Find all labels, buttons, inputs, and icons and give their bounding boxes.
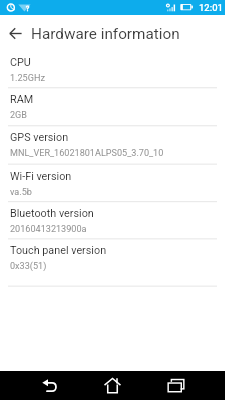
staticText: Touch panel version — [10, 244, 107, 257]
staticText: GPS version — [10, 131, 69, 144]
staticText: Hardware information — [31, 25, 180, 43]
button[interactable]: Bluetooth version — [0, 201, 225, 238]
button[interactable]: Recent apps — [161, 371, 190, 400]
staticText: CPU — [10, 56, 31, 69]
staticText: MNL_VER_16021801ALPS05_3.70_10 — [10, 148, 164, 159]
staticText: va.5b — [10, 187, 32, 198]
staticText: 0x33(51) — [10, 261, 47, 272]
staticText: 20160413213900a — [10, 224, 87, 235]
staticText: 12:01 — [199, 2, 223, 13]
button[interactable]: Navigate up — [0, 18, 30, 48]
staticText: 1.25GHz — [10, 73, 45, 84]
staticText: Bluetooth version — [10, 207, 94, 220]
button[interactable]: Back — [35, 371, 64, 400]
button[interactable]: Touch panel version — [0, 238, 225, 285]
button[interactable]: GPS version — [0, 125, 225, 163]
button[interactable]: Wi-Fi version — [0, 164, 225, 202]
button[interactable]: Home — [98, 371, 127, 400]
button[interactable]: RAM — [0, 87, 225, 125]
staticText: 2GB — [10, 110, 27, 121]
staticText: Wi-Fi version — [10, 170, 72, 183]
staticText: RAM — [10, 93, 34, 106]
button[interactable]: CPU — [0, 50, 225, 88]
